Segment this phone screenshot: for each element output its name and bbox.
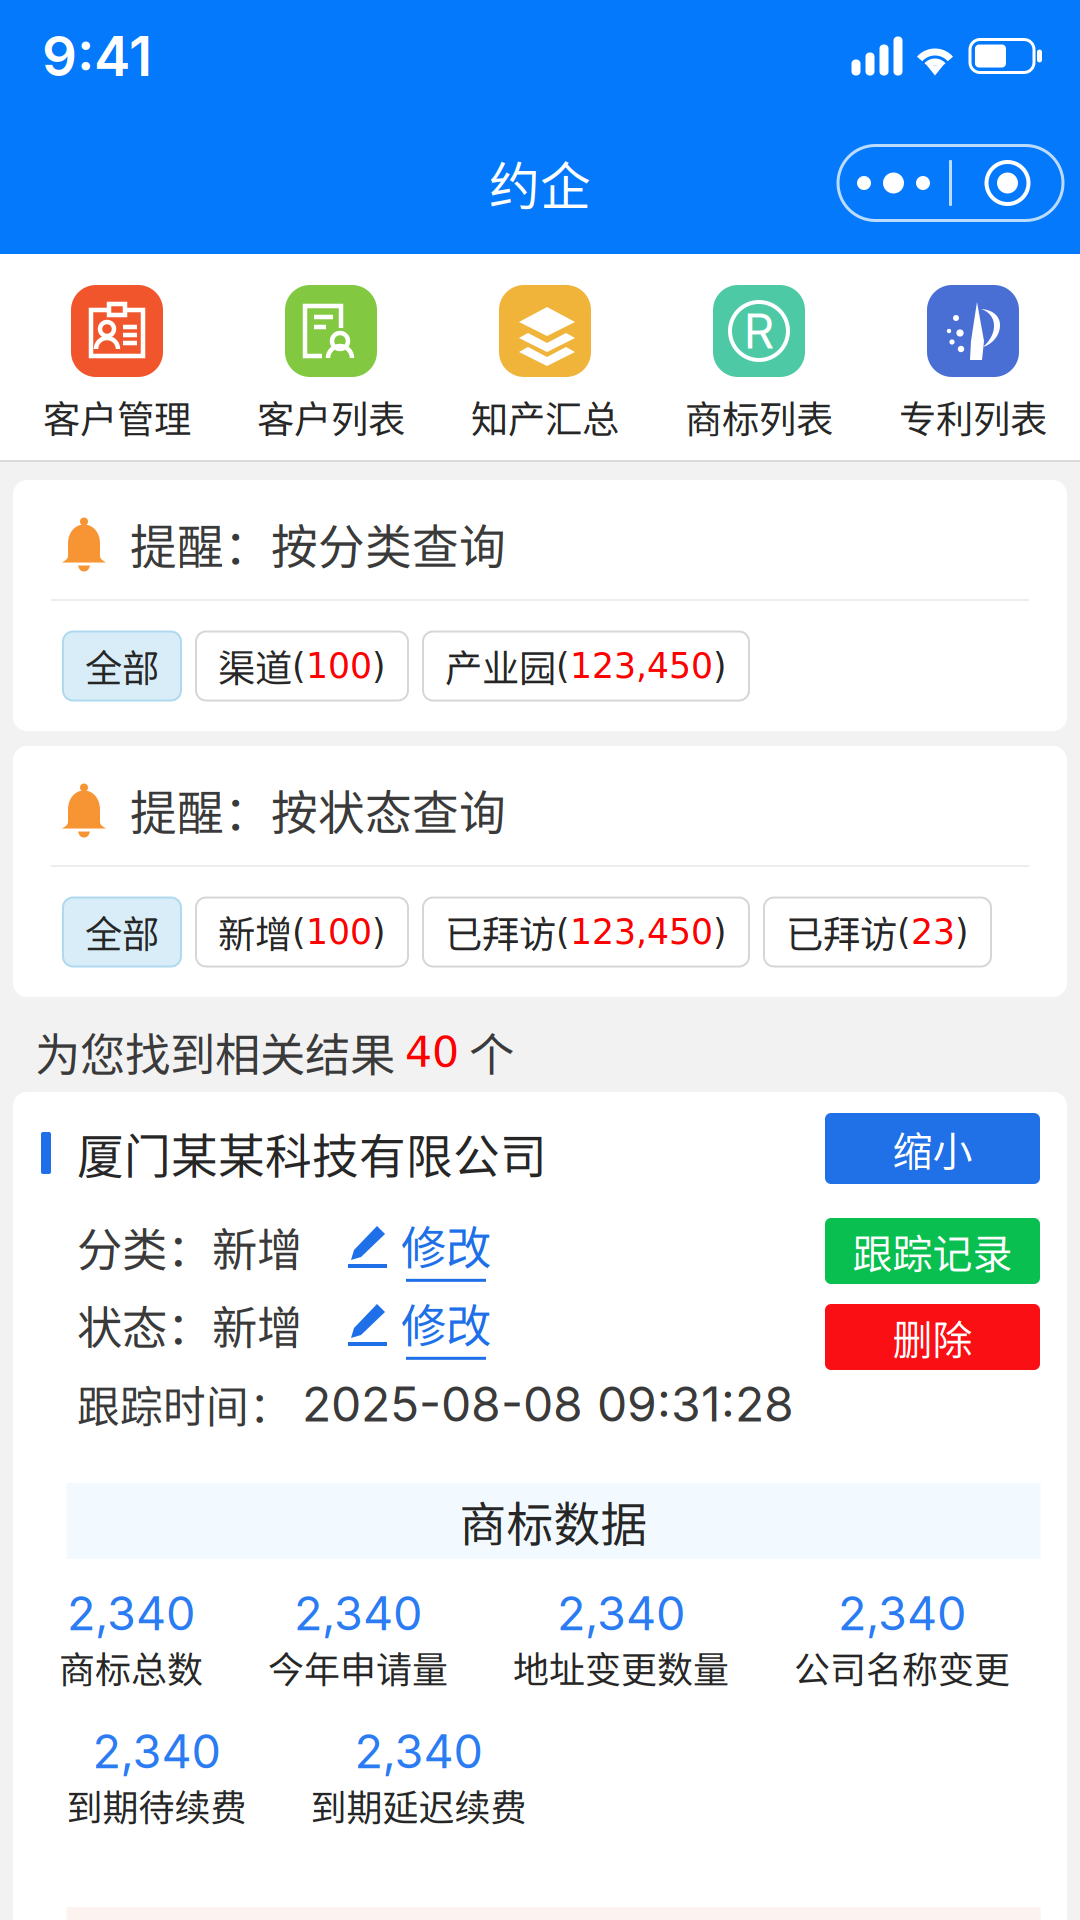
staticText: 个 bbox=[459, 1019, 514, 1085]
staticText: ) bbox=[713, 912, 727, 952]
staticText: ( bbox=[556, 912, 570, 952]
staticText: 今年申请量 bbox=[268, 1641, 448, 1694]
staticText: ) bbox=[713, 646, 727, 686]
staticText: 123,450 bbox=[570, 646, 713, 686]
staticText: 2,340 bbox=[557, 1585, 685, 1641]
staticText: 商标列表 bbox=[685, 390, 833, 444]
button[interactable]: 已拜访 bbox=[764, 897, 991, 966]
staticText: ) bbox=[372, 646, 386, 686]
button[interactable]: 跟踪记录 bbox=[825, 1218, 1040, 1284]
button[interactable]: More options bbox=[838, 145, 1063, 220]
staticText: 约企 bbox=[489, 146, 591, 220]
staticText: ( bbox=[292, 912, 306, 952]
staticText: 修改 bbox=[401, 1290, 491, 1356]
button[interactable]: 客户列表 bbox=[224, 254, 438, 460]
button[interactable]: 修改 bbox=[347, 1290, 491, 1360]
staticText: 修改 bbox=[401, 1212, 491, 1278]
button[interactable]: R bbox=[652, 254, 866, 460]
staticText: 客户列表 bbox=[257, 390, 405, 444]
staticText: 地址变更数量 bbox=[513, 1641, 729, 1694]
staticText: 到期延迟续费 bbox=[310, 1779, 526, 1832]
staticText: 渠道 bbox=[218, 639, 292, 693]
staticText: 2025-08-08 09:31:28 bbox=[302, 1375, 794, 1433]
button[interactable]: 渠道 bbox=[196, 631, 408, 700]
staticText: 100 bbox=[306, 646, 372, 686]
button[interactable]: 客户管理 bbox=[10, 254, 224, 460]
staticText: 知产汇总 bbox=[471, 390, 619, 444]
staticText: 40 bbox=[405, 1027, 459, 1077]
staticText: 23 bbox=[911, 912, 955, 952]
staticText: 为您找到相关结果 bbox=[35, 1019, 405, 1085]
staticText: 全部 bbox=[85, 639, 159, 693]
button[interactable]: 产业园 bbox=[423, 631, 749, 700]
staticText: ) bbox=[955, 912, 969, 952]
staticText: 删除 bbox=[892, 1308, 972, 1366]
staticText: 已拜访 bbox=[786, 905, 897, 959]
staticText: R bbox=[743, 302, 774, 360]
button[interactable]: 缩小 bbox=[825, 1113, 1040, 1184]
button[interactable]: 全部 bbox=[63, 631, 181, 700]
staticText: 缩小 bbox=[892, 1119, 972, 1177]
staticText: 客户管理 bbox=[43, 390, 191, 444]
button[interactable]: 新增 bbox=[196, 897, 408, 966]
button[interactable]: 全部 bbox=[63, 897, 181, 966]
staticText: 公司名称变更 bbox=[794, 1641, 1010, 1694]
staticText: 专利列表 bbox=[899, 390, 1047, 444]
staticText: 商标总数 bbox=[59, 1641, 203, 1694]
staticText: 提醒：按分类查询 bbox=[130, 510, 506, 577]
staticText: 9:41 bbox=[42, 23, 152, 89]
staticText: 跟踪时间： bbox=[77, 1373, 292, 1435]
staticText: 商标数据 bbox=[459, 1487, 647, 1555]
staticText: ( bbox=[897, 912, 911, 952]
staticText: 2,340 bbox=[67, 1585, 195, 1641]
staticText: 2,340 bbox=[838, 1585, 966, 1641]
button[interactable]: 删除 bbox=[825, 1304, 1040, 1370]
staticText: 100 bbox=[306, 912, 372, 952]
staticText: 2,340 bbox=[354, 1723, 482, 1779]
staticText: 到期待续费 bbox=[66, 1779, 246, 1832]
staticText: 厦门某某科技有限公司 bbox=[77, 1119, 547, 1187]
staticText: 提醒：按状态查询 bbox=[130, 776, 506, 843]
staticText: 产业园 bbox=[445, 639, 556, 693]
staticText: 2,340 bbox=[294, 1585, 422, 1641]
staticText: 已拜访 bbox=[445, 905, 556, 959]
staticText: 分类：新增 bbox=[77, 1214, 302, 1280]
button[interactable]: 专利列表 bbox=[866, 254, 1080, 460]
staticText: 全部 bbox=[85, 905, 159, 959]
staticText: 2,340 bbox=[92, 1723, 220, 1779]
staticText: ) bbox=[372, 912, 386, 952]
staticText: 状态：新增 bbox=[77, 1292, 302, 1358]
staticText: ( bbox=[292, 646, 306, 686]
button[interactable]: 知产汇总 bbox=[438, 254, 652, 460]
button[interactable]: 已拜访 bbox=[423, 897, 749, 966]
staticText: 123,450 bbox=[570, 912, 713, 952]
staticText: 新增 bbox=[218, 905, 292, 959]
button[interactable]: 修改 bbox=[347, 1212, 491, 1282]
staticText: 跟踪记录 bbox=[852, 1222, 1012, 1280]
staticText: ( bbox=[556, 646, 570, 686]
